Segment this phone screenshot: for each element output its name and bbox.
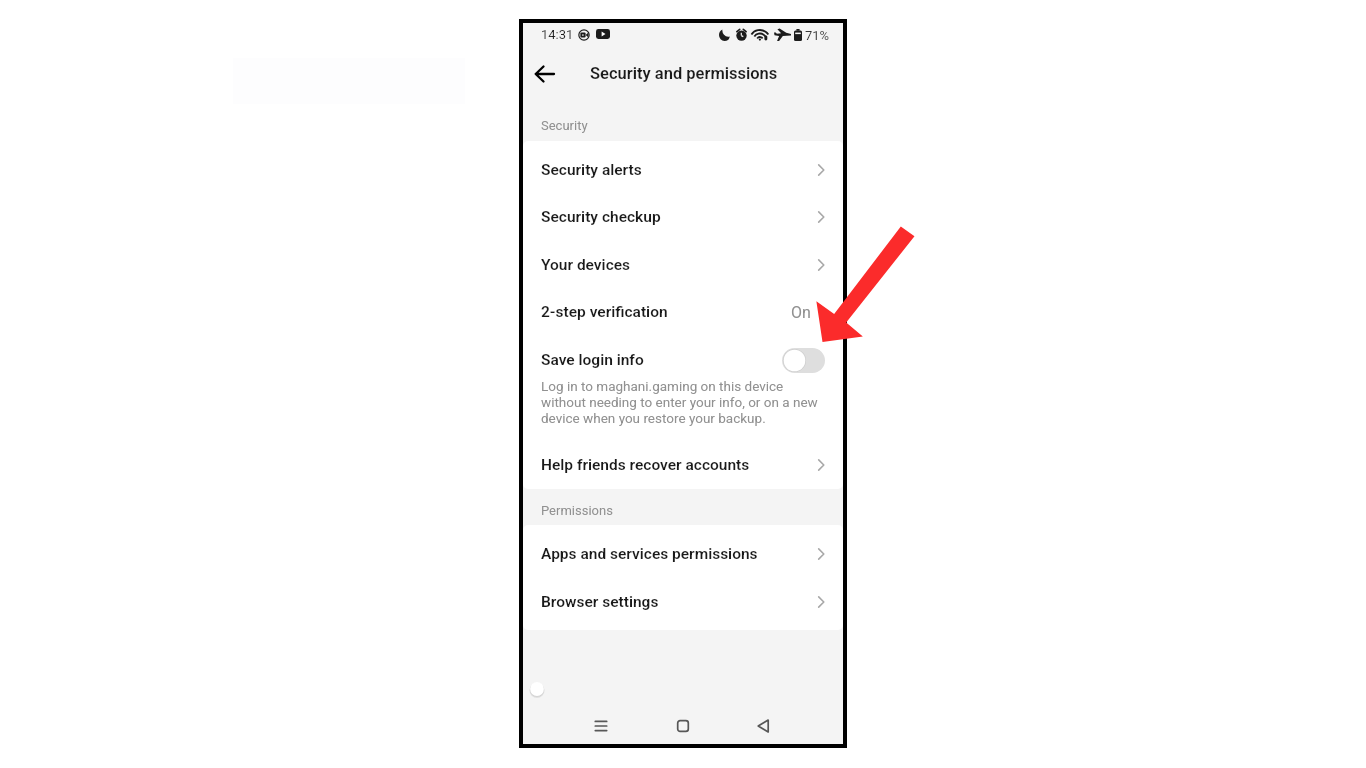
staticText: Apps and services permissions: [541, 545, 758, 563]
staticText: without needing to enter your info, or o…: [541, 394, 818, 410]
staticText: Browser settings: [541, 593, 659, 611]
button[interactable]: Apps and services permissions: [523, 531, 843, 577]
staticText: Security and permissions: [590, 64, 778, 83]
staticText: Help friends recover accounts: [541, 456, 750, 474]
staticText: Security alerts: [541, 161, 642, 179]
button[interactable]: Back: [748, 710, 780, 742]
button[interactable]: Back: [526, 56, 564, 92]
button[interactable]: Help friends recover accounts: [523, 442, 843, 488]
staticText: On: [791, 303, 811, 322]
staticText: Security: [541, 118, 588, 133]
button[interactable]: Home: [667, 710, 699, 742]
staticText: Permissions: [541, 503, 613, 518]
staticText: 71%: [805, 28, 830, 43]
staticText: Log in to maghani.gaming on this device: [541, 378, 784, 394]
button[interactable]: Save login info toggle, off: [782, 348, 825, 373]
staticText: 14:31: [541, 27, 574, 42]
button[interactable]: Save login info: [523, 337, 843, 383]
button[interactable]: Recent apps: [585, 710, 617, 742]
staticText: Save login info: [541, 351, 644, 369]
button[interactable]: 2-step verification: [523, 289, 843, 335]
button[interactable]: Browser settings: [523, 579, 843, 625]
button[interactable]: Security alerts: [523, 147, 843, 193]
button[interactable]: Your devices: [523, 242, 843, 288]
staticText: Security checkup: [541, 208, 661, 226]
staticText: device when you restore your backup.: [541, 410, 766, 426]
button[interactable]: Security checkup: [523, 194, 843, 240]
staticText: 2-step verification: [541, 303, 668, 321]
button[interactable]: Floating bubble: [529, 681, 545, 697]
staticText: Your devices: [541, 256, 631, 274]
